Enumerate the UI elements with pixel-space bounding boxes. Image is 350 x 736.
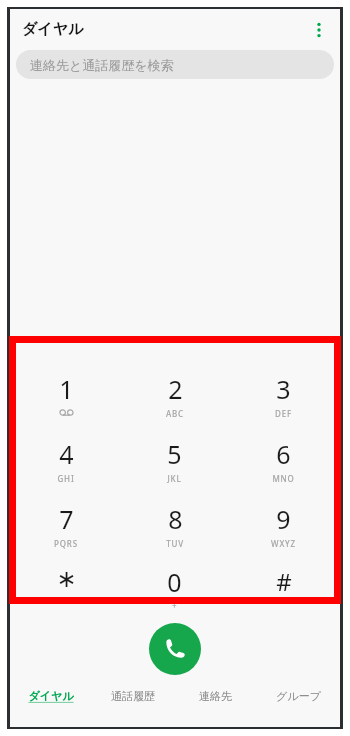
staticText: ダイヤル (22, 20, 84, 39)
staticText: TUV (166, 538, 184, 549)
staticText: JKL (167, 473, 182, 484)
staticText: ダイヤル (28, 689, 74, 703)
staticText: ABC (166, 408, 184, 419)
staticText: 3 (276, 372, 291, 406)
button[interactable]: 5 (120, 437, 229, 488)
button[interactable]: 6 (229, 437, 338, 488)
staticText: 7 (59, 502, 74, 536)
staticText: MNO (272, 473, 295, 484)
staticText: PQRS (54, 538, 78, 549)
staticText: ∗ (56, 565, 77, 593)
button[interactable]: Call (149, 623, 201, 675)
staticText: 8 (168, 502, 183, 536)
button[interactable]: 0 (120, 565, 229, 609)
button[interactable]: 1 (12, 372, 120, 423)
button[interactable]: ダイヤル (10, 689, 92, 719)
button[interactable]: 連絡先と通話履歴を検索 (16, 50, 334, 79)
button[interactable]: 2 (120, 372, 229, 423)
staticText: DEF (275, 408, 292, 419)
button[interactable]: 8 (120, 502, 229, 553)
staticText: 1 (59, 372, 74, 406)
staticText: WXYZ (271, 538, 296, 549)
staticText: + (172, 600, 177, 609)
button[interactable]: 3 (229, 372, 338, 423)
staticText: 通話履歴 (111, 689, 155, 703)
staticText: GHI (57, 473, 75, 484)
button[interactable]: # (229, 565, 338, 609)
staticText: # (276, 565, 292, 598)
staticText: 連絡先と通話履歴を検索 (30, 57, 174, 73)
staticText: 4 (59, 437, 74, 471)
button[interactable]: 連絡先 (174, 689, 257, 719)
staticText: 0 (167, 565, 182, 599)
staticText: 5 (167, 437, 182, 471)
button[interactable]: 4 (12, 437, 120, 488)
button[interactable]: 9 (229, 502, 338, 553)
staticText: 9 (276, 502, 291, 536)
button[interactable]: グループ (257, 689, 340, 719)
staticText: 連絡先 (199, 689, 232, 703)
staticText: 2 (168, 372, 183, 406)
staticText: グループ (276, 689, 321, 703)
button[interactable]: 7 (12, 502, 120, 553)
button[interactable]: ∗ (12, 565, 120, 609)
staticText: 6 (276, 437, 291, 471)
button[interactable]: 通話履歴 (92, 689, 174, 719)
button[interactable]: More options (302, 13, 336, 47)
